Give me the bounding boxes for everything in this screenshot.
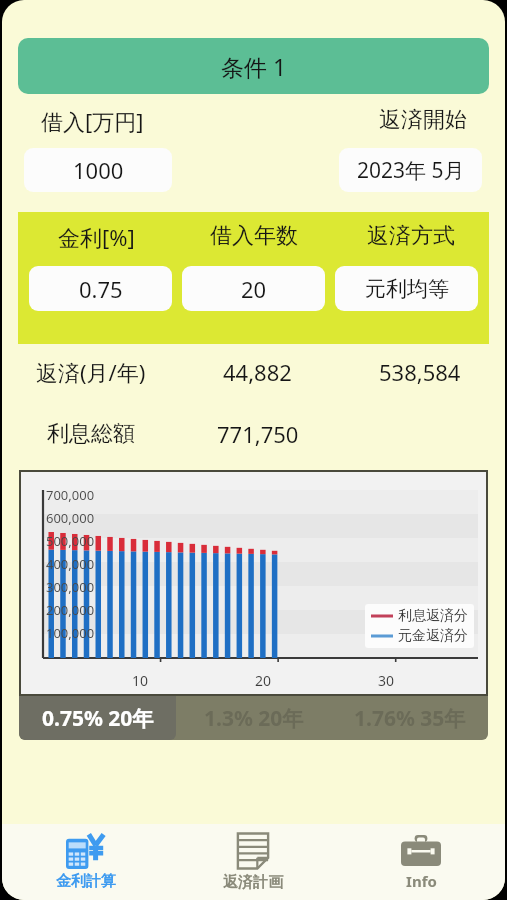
staticText: 0.75 — [79, 274, 123, 304]
staticText: 500,000 — [46, 532, 95, 550]
staticText: 1.76% 35年 — [354, 704, 466, 733]
staticText: 300,000 — [46, 578, 95, 596]
button[interactable]: Info — [337, 824, 505, 900]
staticText: 返済方式 — [367, 222, 455, 250]
staticText: 0.75% 20年 — [42, 704, 154, 733]
staticText: 20 — [241, 274, 267, 304]
staticText: 元利均等 — [365, 276, 449, 302]
button[interactable]: 1000 — [24, 148, 172, 192]
staticText: Info — [406, 871, 437, 891]
staticText: 利息返済分 — [398, 607, 468, 625]
staticText: 400,000 — [46, 555, 95, 573]
staticText: 金利計算 — [56, 872, 116, 891]
staticText: 600,000 — [46, 509, 95, 527]
button[interactable]: 1.76% 35年 — [332, 696, 488, 740]
staticText: 返済計画 — [223, 873, 283, 892]
staticText: 返済(月/年) — [36, 357, 146, 387]
staticText: 借入年数 — [210, 222, 298, 250]
button[interactable]: 0.75 — [29, 266, 172, 311]
button[interactable]: 元利均等 — [335, 266, 478, 311]
button[interactable]: 0.75% 20年 — [19, 696, 176, 740]
staticText: 条件 1 — [221, 51, 287, 82]
button[interactable]: 返済計画 — [169, 824, 337, 900]
button[interactable]: 2023年 5月 — [339, 148, 482, 192]
staticText: 200,000 — [46, 601, 95, 619]
button[interactable]: 条件 1 — [18, 38, 489, 94]
staticText: 1.3% 20年 — [204, 704, 304, 733]
staticText: 30 — [378, 671, 395, 690]
staticText: 10 — [132, 671, 149, 690]
staticText: 元金返済分 — [398, 627, 468, 645]
staticText: 771,750 — [217, 419, 299, 449]
staticText: 1000 — [73, 155, 124, 185]
staticText: 返済開始 — [379, 106, 467, 134]
button[interactable]: 20 — [182, 266, 325, 311]
staticText: 2023年 5月 — [357, 156, 465, 185]
staticText: 20 — [255, 671, 272, 690]
staticText: 100,000 — [46, 624, 95, 642]
staticText: 44,882 — [223, 357, 292, 387]
staticText: 借入[万円] — [41, 106, 144, 136]
staticText: 利息総額 — [47, 420, 135, 448]
staticText: 700,000 — [46, 486, 95, 504]
button[interactable]: 1.3% 20年 — [176, 696, 332, 740]
staticText: 金利[%] — [58, 222, 135, 252]
button[interactable]: 金利計算 — [2, 824, 169, 900]
staticText: 538,584 — [379, 357, 461, 387]
